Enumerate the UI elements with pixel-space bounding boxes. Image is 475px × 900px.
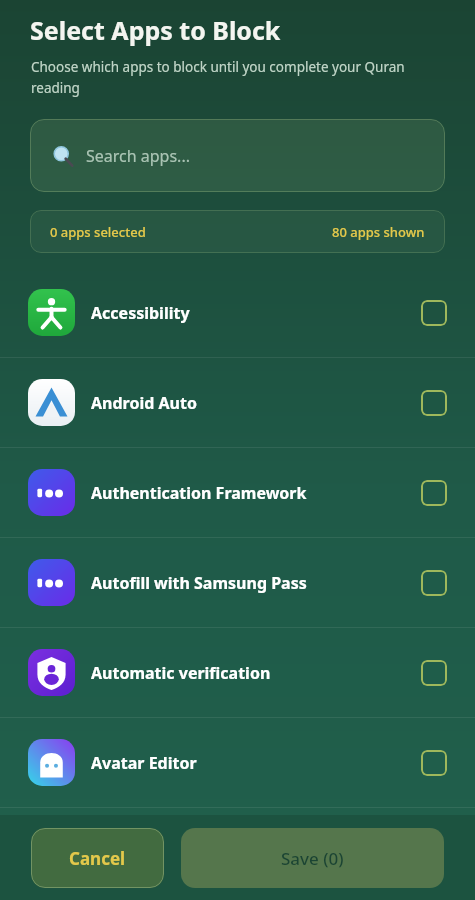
- staticText: Select Apps to Block: [30, 13, 281, 47]
- staticText: Autofill with Samsung Pass: [91, 572, 421, 594]
- button[interactable]: Select Accessibility: [421, 300, 447, 326]
- button[interactable]: Android Auto: [0, 358, 475, 447]
- button[interactable]: Select Automatic verification: [421, 660, 447, 686]
- button[interactable]: Automatic verification: [0, 628, 475, 717]
- button[interactable]: Save (0): [181, 828, 444, 888]
- staticText: Accessibility: [91, 302, 421, 324]
- staticText: Android Auto: [91, 392, 421, 414]
- button[interactable]: Select Avatar Editor: [421, 750, 447, 776]
- button[interactable]: Search apps...: [30, 119, 445, 192]
- staticText: 80 apps shown: [332, 223, 425, 241]
- staticText: Automatic verification: [91, 662, 421, 684]
- button[interactable]: Select Authentication Framework: [421, 480, 447, 506]
- staticText: Search apps...: [86, 145, 190, 167]
- button[interactable]: Select Autofill with Samsung Pass: [421, 570, 447, 596]
- staticText: Authentication Framework: [91, 482, 421, 504]
- button[interactable]: Autofill with Samsung Pass: [0, 538, 475, 627]
- staticText: Choose which apps to block until you com…: [31, 58, 425, 97]
- staticText: Save (0): [281, 847, 344, 870]
- button[interactable]: Accessibility: [0, 268, 475, 357]
- button[interactable]: Avatar Editor: [0, 718, 475, 807]
- staticText: Cancel: [69, 847, 126, 870]
- staticText: 0 apps selected: [50, 223, 146, 241]
- button[interactable]: Authentication Framework: [0, 448, 475, 537]
- staticText: Avatar Editor: [91, 752, 421, 774]
- button[interactable]: Select Android Auto: [421, 390, 447, 416]
- button[interactable]: Cancel: [31, 828, 164, 888]
